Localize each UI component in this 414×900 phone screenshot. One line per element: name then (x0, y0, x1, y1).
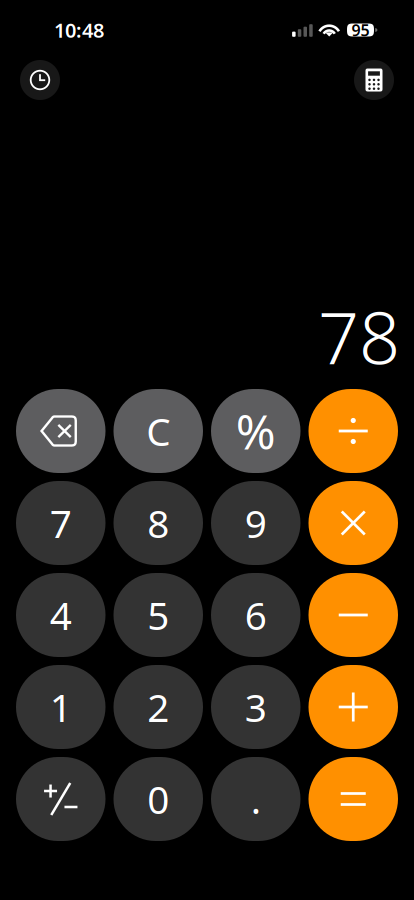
button[interactable]: . (211, 757, 300, 841)
button[interactable]: Delete (16, 389, 105, 473)
staticText: 6 (245, 589, 267, 641)
staticText: 4 (50, 589, 72, 641)
button[interactable]: 4 (16, 573, 105, 657)
staticText: C (146, 405, 170, 457)
button[interactable]: 3 (211, 665, 300, 749)
button[interactable]: 9 (211, 481, 300, 565)
staticText: 0 (147, 773, 169, 825)
button[interactable]: 2 (113, 665, 203, 749)
staticText: 7 (50, 497, 72, 549)
staticText: 9 (245, 497, 267, 549)
button[interactable]: History (20, 60, 60, 100)
button[interactable]: Plus minus (16, 757, 105, 841)
staticText: 78 (318, 288, 400, 384)
staticText: 5 (147, 589, 169, 641)
button[interactable]: 1 (16, 665, 105, 749)
button[interactable]: 8 (113, 481, 203, 565)
staticText: 10:48 (54, 17, 104, 43)
button[interactable]: 0 (113, 757, 203, 841)
button[interactable]: Multiply (308, 481, 398, 565)
button[interactable]: 5 (113, 573, 203, 657)
staticText: 3 (245, 681, 267, 733)
button[interactable]: C (113, 389, 203, 473)
button[interactable]: Calculator mode (354, 60, 394, 100)
staticText: 2 (147, 681, 169, 733)
staticText: 1 (50, 681, 72, 733)
staticText: 8 (147, 497, 169, 549)
button[interactable]: Subtract (308, 573, 398, 657)
button[interactable]: Add (308, 665, 398, 749)
button[interactable]: % (211, 389, 300, 473)
button[interactable]: 6 (211, 573, 300, 657)
button[interactable]: Equals (308, 757, 398, 841)
staticText: . (251, 773, 261, 825)
button[interactable]: Divide (308, 389, 398, 473)
button[interactable]: 7 (16, 481, 105, 565)
staticText: % (236, 399, 276, 463)
staticText: 95 (351, 19, 369, 41)
